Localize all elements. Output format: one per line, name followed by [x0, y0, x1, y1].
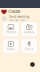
button[interactable]: Send: [30, 62, 35, 67]
staticText: How can I help?: [9, 19, 27, 22]
staticText: Good morning: [9, 15, 30, 18]
staticText: Photos: [6, 30, 16, 34]
button[interactable]: Video: [3, 39, 19, 54]
staticText: Camera: [24, 30, 35, 34]
staticText: Claude: [8, 9, 20, 14]
button[interactable]: Photos: [3, 22, 19, 37]
staticText: Voice: [25, 48, 34, 51]
button[interactable]: Voice: [21, 39, 37, 54]
staticText: Video: [6, 48, 15, 51]
button[interactable]: Camera: [21, 22, 37, 37]
